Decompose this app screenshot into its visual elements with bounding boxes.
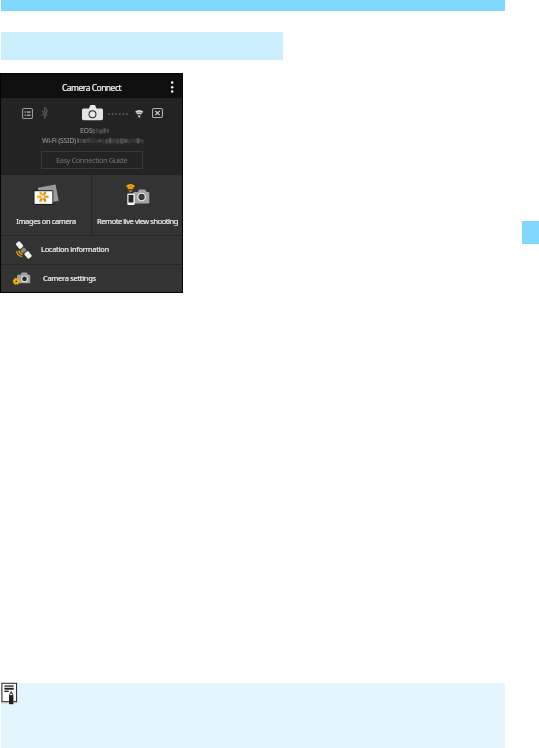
- button[interactable]: [1, 175, 91, 235]
- staticText: Location information: [41, 244, 109, 254]
- staticText: EOS: [80, 126, 93, 136]
- staticText: Remote live view shooting: [97, 216, 178, 226]
- staticText: Easy Connection Guide: [56, 155, 128, 165]
- staticText: Images on camera: [16, 216, 76, 226]
- staticText: Wi-Fi (SSID) :: [42, 136, 79, 146]
- button[interactable]: More options: [167, 77, 180, 101]
- button[interactable]: [1, 236, 182, 264]
- button[interactable]: Camera Connect: [1, 76, 182, 100]
- staticText: Camera settings: [43, 273, 96, 283]
- button[interactable]: [92, 175, 182, 235]
- staticText: Camera Connect: [62, 82, 122, 94]
- button[interactable]: Easy Connection Guide: [41, 151, 143, 169]
- button[interactable]: [1, 265, 182, 292]
